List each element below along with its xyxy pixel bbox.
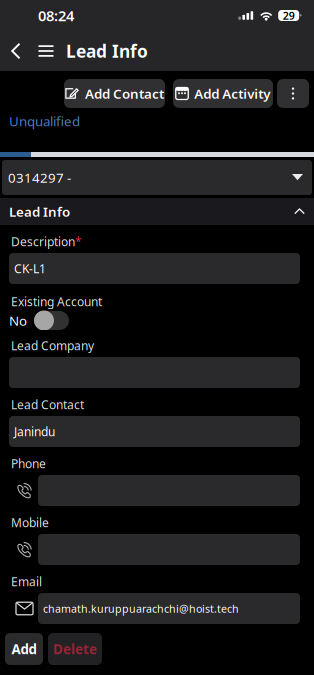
button[interactable]: More options <box>277 79 309 108</box>
button[interactable]: Existing Account <box>34 310 69 330</box>
staticText: 29 <box>283 8 295 23</box>
staticText: 0314297 - <box>8 169 71 186</box>
button[interactable]: Add Contact <box>64 79 165 108</box>
staticText: Description <box>11 233 75 249</box>
staticText: * <box>75 233 82 249</box>
button[interactable]: Add Activity <box>173 79 273 108</box>
staticText: Add <box>11 640 36 658</box>
button[interactable]: Menu <box>32 31 60 71</box>
staticText: Lead Company <box>11 337 94 353</box>
staticText: Lead Info <box>66 39 148 62</box>
staticText: Existing Account <box>11 293 102 309</box>
staticText: Add Contact <box>85 85 164 102</box>
staticText: Lead Contact <box>11 396 84 412</box>
staticText: Email <box>11 573 42 589</box>
button[interactable]: Back <box>0 31 32 71</box>
staticText: Janindu <box>14 423 55 439</box>
staticText: Delete <box>53 640 97 658</box>
staticText: Phone <box>11 455 46 471</box>
button[interactable]: 0314297 - <box>0 160 314 195</box>
staticText: chamath.kuruppuarachchi@hoist.tech <box>43 601 239 616</box>
staticText: Mobile <box>11 514 49 530</box>
button[interactable]: Add <box>5 633 43 665</box>
staticText: Lead Info <box>9 203 70 220</box>
staticText: 08:24 <box>38 6 74 25</box>
button[interactable]: Delete <box>48 633 102 665</box>
staticText: CK-L1 <box>14 260 46 276</box>
staticText: Unqualified <box>9 112 80 130</box>
staticText: No <box>9 312 27 329</box>
staticText: Add Activity <box>194 85 270 102</box>
button[interactable]: Lead Info <box>0 198 314 225</box>
